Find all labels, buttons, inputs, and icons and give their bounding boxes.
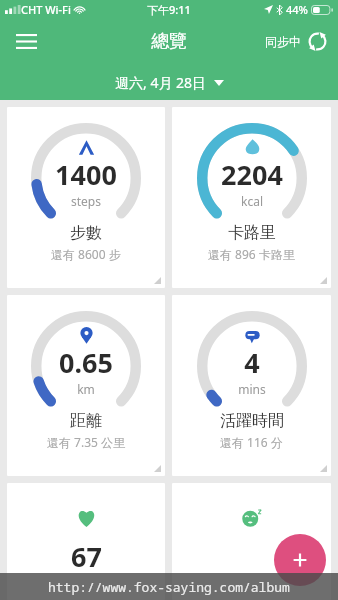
- staticText: 2204: [221, 156, 283, 193]
- staticText: 44%: [286, 2, 308, 17]
- staticText: 0.65: [59, 344, 113, 381]
- button[interactable]: 週六, 4月 28日: [0, 64, 338, 100]
- staticText: steps: [71, 193, 101, 209]
- button[interactable]: 1400: [7, 107, 165, 288]
- button[interactable]: Sync: [265, 31, 328, 52]
- staticText: 1400: [55, 156, 117, 193]
- staticText: 活躍時間: [220, 411, 284, 431]
- staticText: 下午9:11: [147, 2, 191, 17]
- button[interactable]: 0.65: [7, 295, 165, 476]
- staticText: km: [77, 381, 95, 397]
- staticText: 還有 8600 步: [51, 246, 121, 262]
- button[interactable]: Add: [274, 534, 326, 586]
- staticText: 步數: [70, 223, 102, 243]
- staticText: 卡路里: [228, 223, 276, 243]
- staticText: 週六, 4月 28日: [115, 73, 207, 92]
- staticText: 距離: [70, 411, 102, 431]
- button[interactable]: [172, 483, 331, 600]
- button[interactable]: Menu: [8, 23, 44, 59]
- staticText: 還有 116 分: [220, 434, 283, 450]
- staticText: kcal: [241, 193, 263, 209]
- button[interactable]: 4: [172, 295, 331, 476]
- button[interactable]: 2204: [172, 107, 331, 288]
- staticText: mins: [238, 381, 266, 397]
- button[interactable]: 67: [7, 483, 165, 600]
- staticText: 67: [71, 538, 102, 575]
- staticText: CHT Wi-Fi: [21, 2, 71, 17]
- staticText: http://www.fox-saying.com/album: [48, 578, 290, 596]
- staticText: 還有 7.35 公里: [47, 434, 126, 450]
- staticText: 同步中: [265, 34, 301, 49]
- staticText: 總覽: [151, 30, 187, 53]
- staticText: 還有 896 卡路里: [208, 246, 295, 262]
- staticText: 4: [244, 344, 260, 381]
